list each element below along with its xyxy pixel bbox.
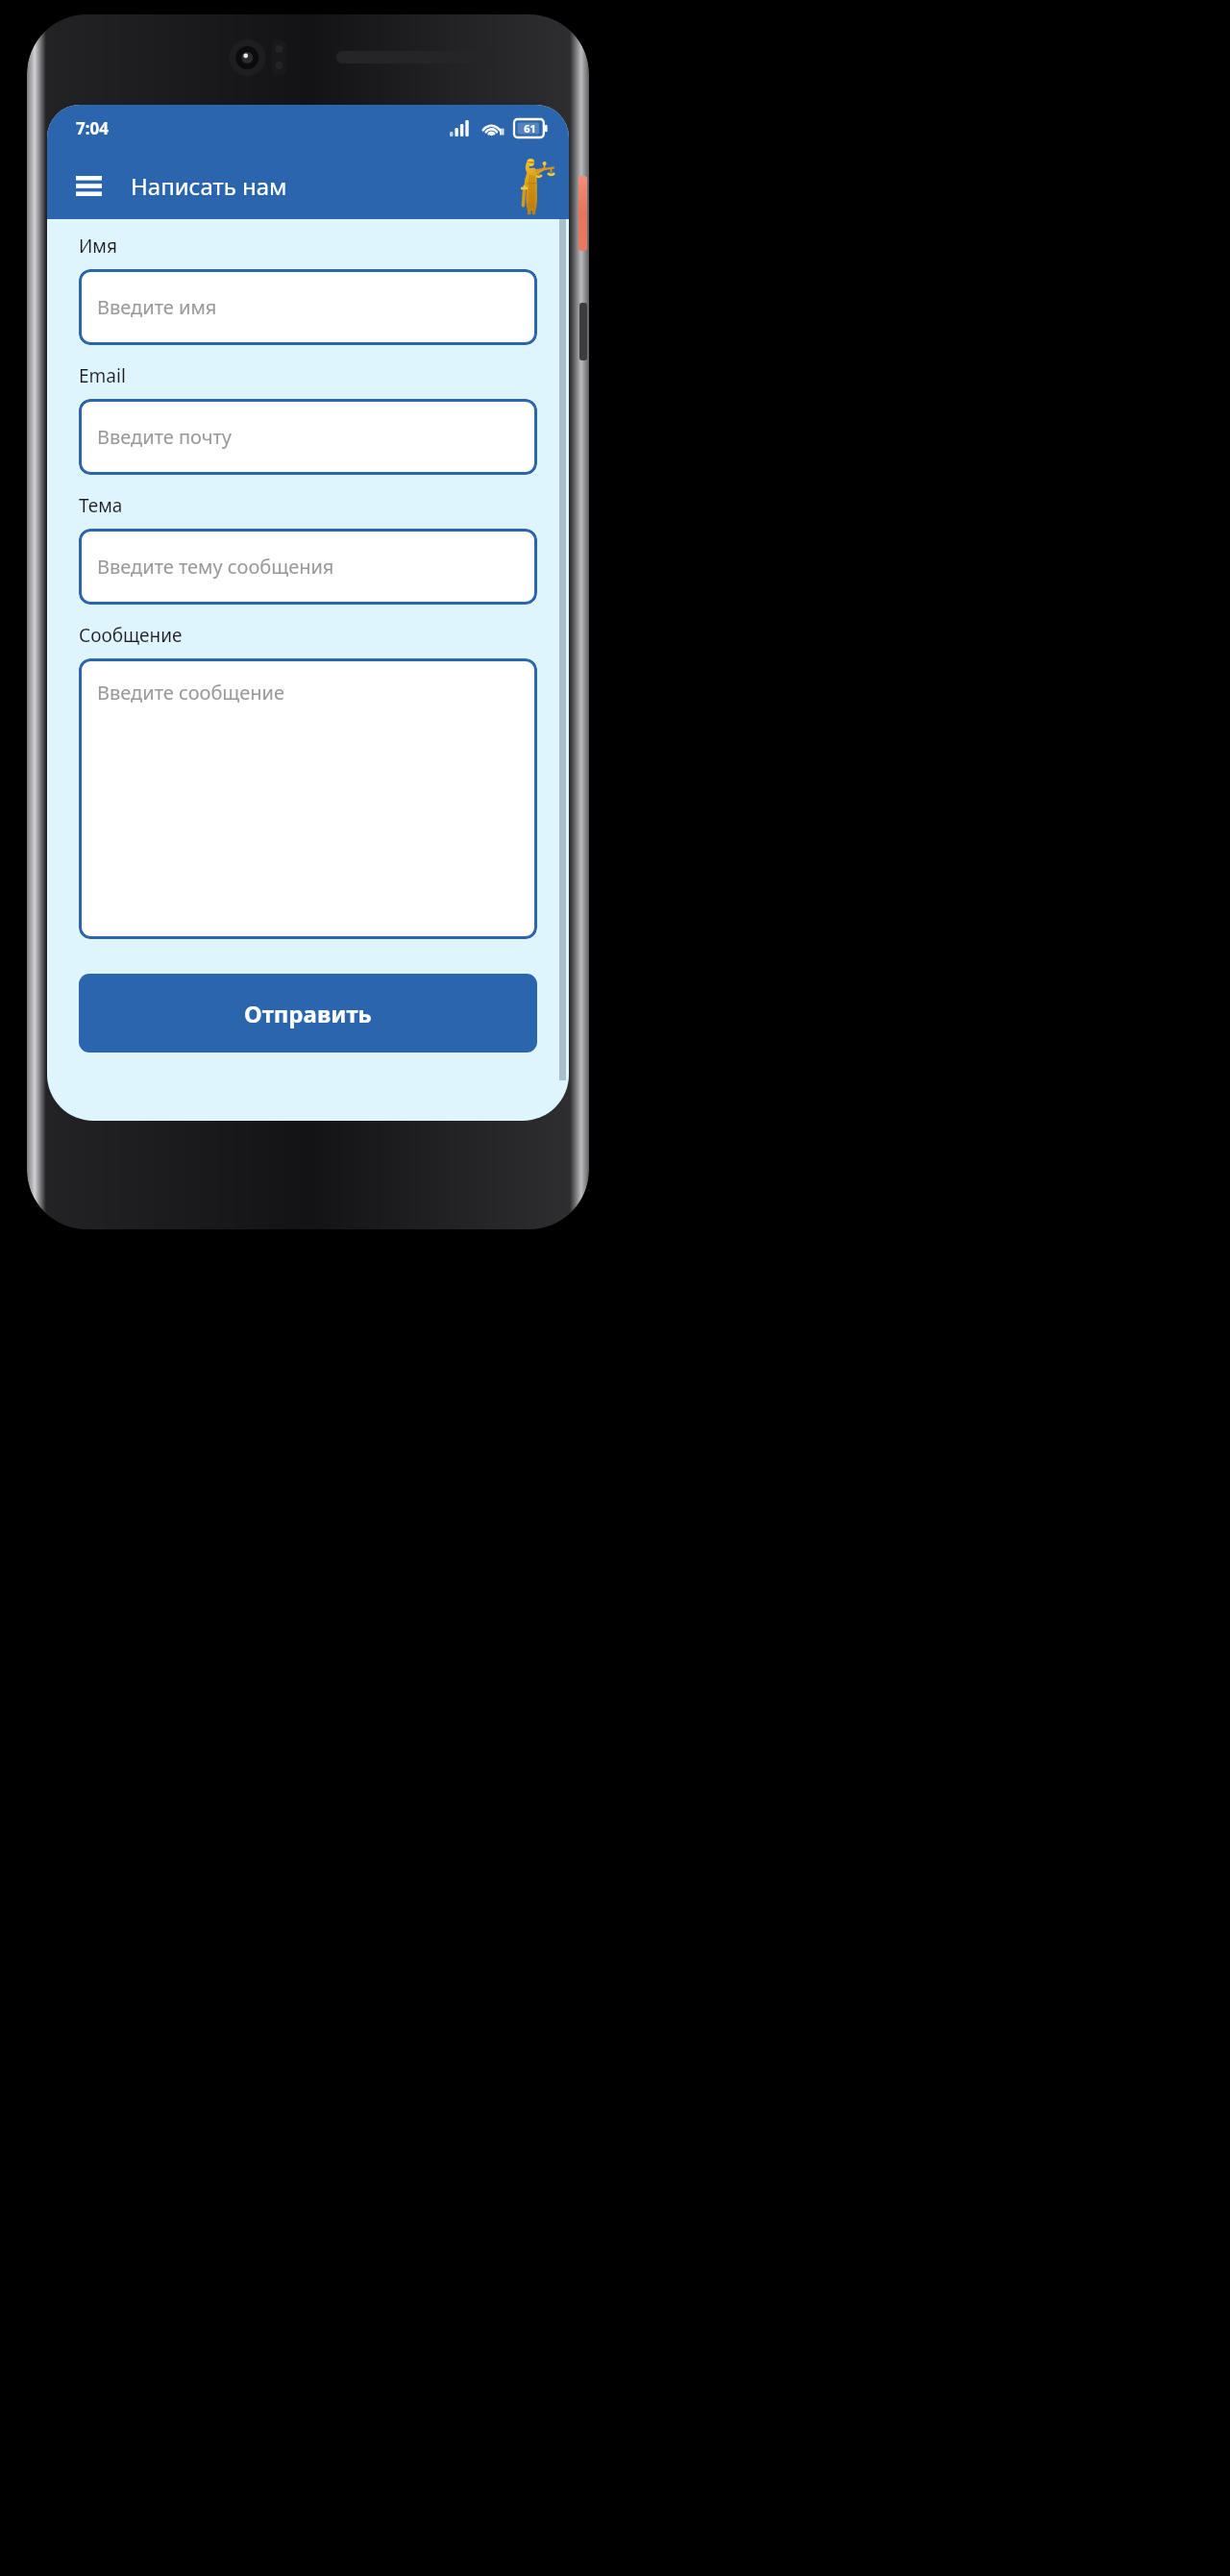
staticText: Отправить	[244, 998, 372, 1029]
button[interactable]: Открыть меню	[66, 163, 111, 208]
button[interactable]: Введите тему сообщения	[79, 529, 537, 605]
staticText: Email	[79, 363, 126, 388]
staticText: Написать нам	[131, 170, 287, 202]
staticText: Тема	[79, 493, 123, 518]
button[interactable]: Введите сообщение	[79, 658, 537, 939]
staticText: Введите почту	[97, 424, 233, 450]
staticText: Сообщение	[79, 623, 183, 648]
staticText: Введите имя	[97, 294, 217, 320]
button[interactable]: Отправить	[79, 974, 537, 1053]
staticText: 61	[524, 121, 536, 136]
button[interactable]: Логотип Фемиды	[510, 155, 553, 216]
staticText: Введите сообщение	[97, 680, 285, 706]
button[interactable]: Введите почту	[79, 399, 537, 475]
staticText: 7:04	[76, 117, 109, 139]
staticText: Имя	[79, 234, 117, 259]
button[interactable]: Введите имя	[79, 269, 537, 345]
staticText: Введите тему сообщения	[97, 554, 334, 580]
